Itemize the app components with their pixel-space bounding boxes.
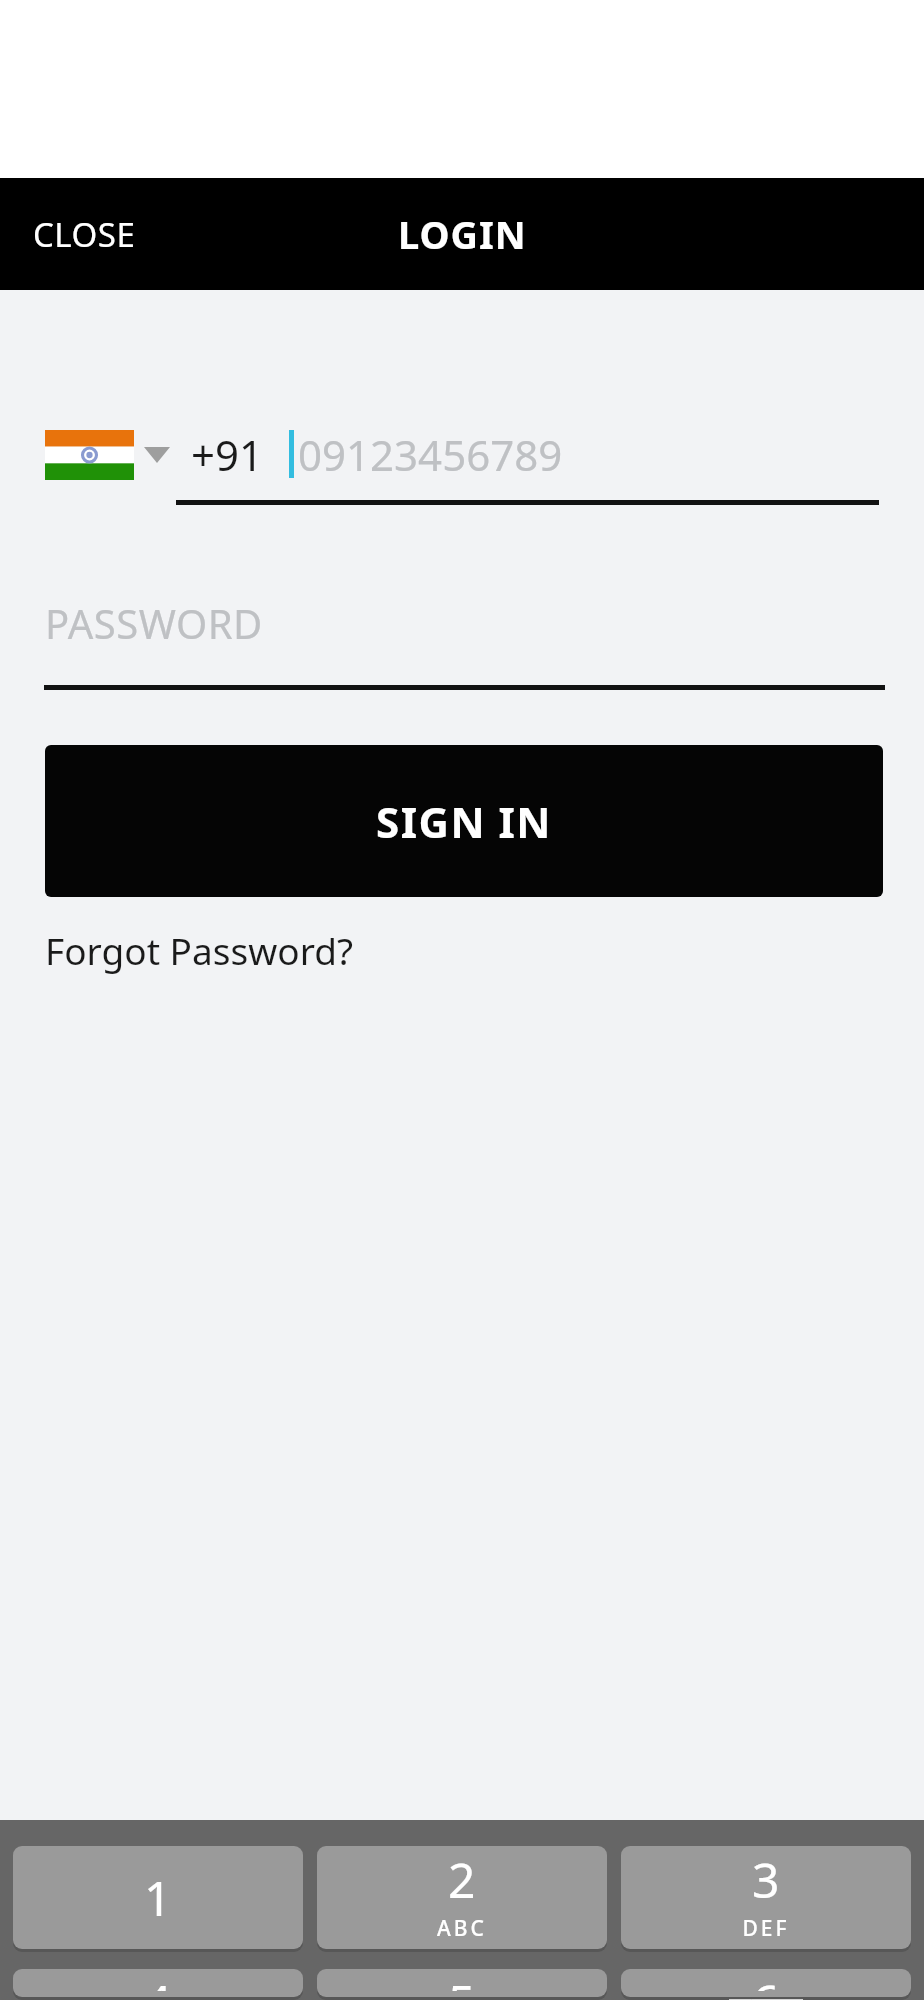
staticText: Forgot Password? — [45, 925, 354, 975]
staticText: 2 — [448, 1847, 476, 1912]
button[interactable]: 3 — [621, 1846, 911, 1949]
button[interactable]: 6 — [621, 1969, 911, 1997]
button[interactable]: 2 — [317, 1846, 607, 1949]
staticText: SIGN IN — [376, 793, 552, 850]
button[interactable]: Forgot Password? — [0, 919, 374, 981]
staticText: 4 — [144, 1969, 172, 1991]
staticText: 5 — [448, 1969, 476, 1991]
button[interactable]: 4 — [13, 1969, 303, 1997]
button[interactable]: 1 — [13, 1846, 303, 1949]
button[interactable]: SIGN IN — [45, 745, 883, 897]
staticText: CLOSE — [33, 212, 136, 257]
button[interactable]: 5 — [317, 1969, 607, 1997]
staticText: PASSWORD — [45, 596, 263, 650]
button[interactable]: CLOSE — [0, 198, 169, 271]
staticText: DEF — [742, 1914, 790, 1943]
staticText: 3 — [752, 1847, 780, 1912]
staticText: 6 — [752, 1969, 780, 1991]
staticText: ABC — [437, 1914, 487, 1943]
staticText: 09123456789 — [298, 426, 563, 483]
staticText: LOGIN — [398, 208, 527, 260]
staticText: +91 — [191, 426, 264, 483]
button[interactable]: +91 — [45, 418, 264, 491]
button[interactable]: PASSWORD — [0, 593, 924, 653]
staticText: 1 — [144, 1865, 172, 1930]
